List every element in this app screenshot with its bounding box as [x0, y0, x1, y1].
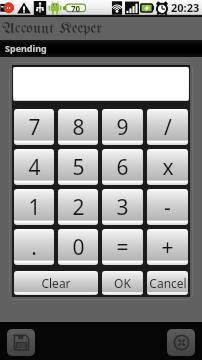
staticText: Cancel [149, 275, 187, 291]
button[interactable]: 1 [14, 189, 54, 225]
button[interactable]: = [102, 229, 143, 265]
button[interactable]: . [14, 229, 54, 265]
staticText: 5 [72, 153, 85, 182]
button[interactable]: Settings [167, 329, 195, 356]
button[interactable]: 2 [58, 189, 98, 225]
staticText: Spending [5, 42, 47, 54]
button[interactable]: x [147, 149, 188, 185]
button[interactable]: 9 [102, 109, 143, 145]
staticText: - [164, 193, 171, 222]
button[interactable]: 3 [102, 189, 143, 225]
button[interactable]: 8 [58, 109, 98, 145]
staticText: 3 [116, 193, 129, 222]
staticText: Clear [41, 275, 71, 291]
button[interactable]: - [147, 189, 188, 225]
staticText: 8 [72, 113, 85, 142]
staticText: 70 [71, 3, 81, 14]
staticText: 4 [28, 153, 41, 182]
button[interactable]: Clear [14, 271, 98, 295]
button[interactable]: + [147, 229, 188, 265]
staticText: 0 [72, 233, 85, 262]
staticText: / [164, 113, 172, 142]
staticText: 1 [28, 193, 41, 222]
staticText: + [161, 233, 174, 262]
button[interactable]: 7 [14, 109, 54, 145]
button[interactable]: 6 [102, 149, 143, 185]
button[interactable]: Cancel [147, 271, 188, 295]
staticText: . [31, 233, 37, 262]
staticText: 20:23 [171, 0, 200, 15]
staticText: = [116, 233, 129, 262]
staticText: 6 [116, 153, 129, 182]
staticText: 7 [28, 113, 41, 142]
staticText: Account Keeper [2, 20, 103, 37]
staticText: 2 [72, 193, 85, 222]
staticText: x [162, 153, 174, 182]
button[interactable]: 5 [58, 149, 98, 185]
button[interactable]: OK [102, 271, 143, 295]
button[interactable]: / [147, 109, 188, 145]
staticText: OK [114, 275, 131, 291]
staticText: 9 [116, 113, 129, 142]
button[interactable]: 4 [14, 149, 54, 185]
button[interactable]: 0 [58, 229, 98, 265]
button[interactable]: Save [7, 329, 35, 356]
